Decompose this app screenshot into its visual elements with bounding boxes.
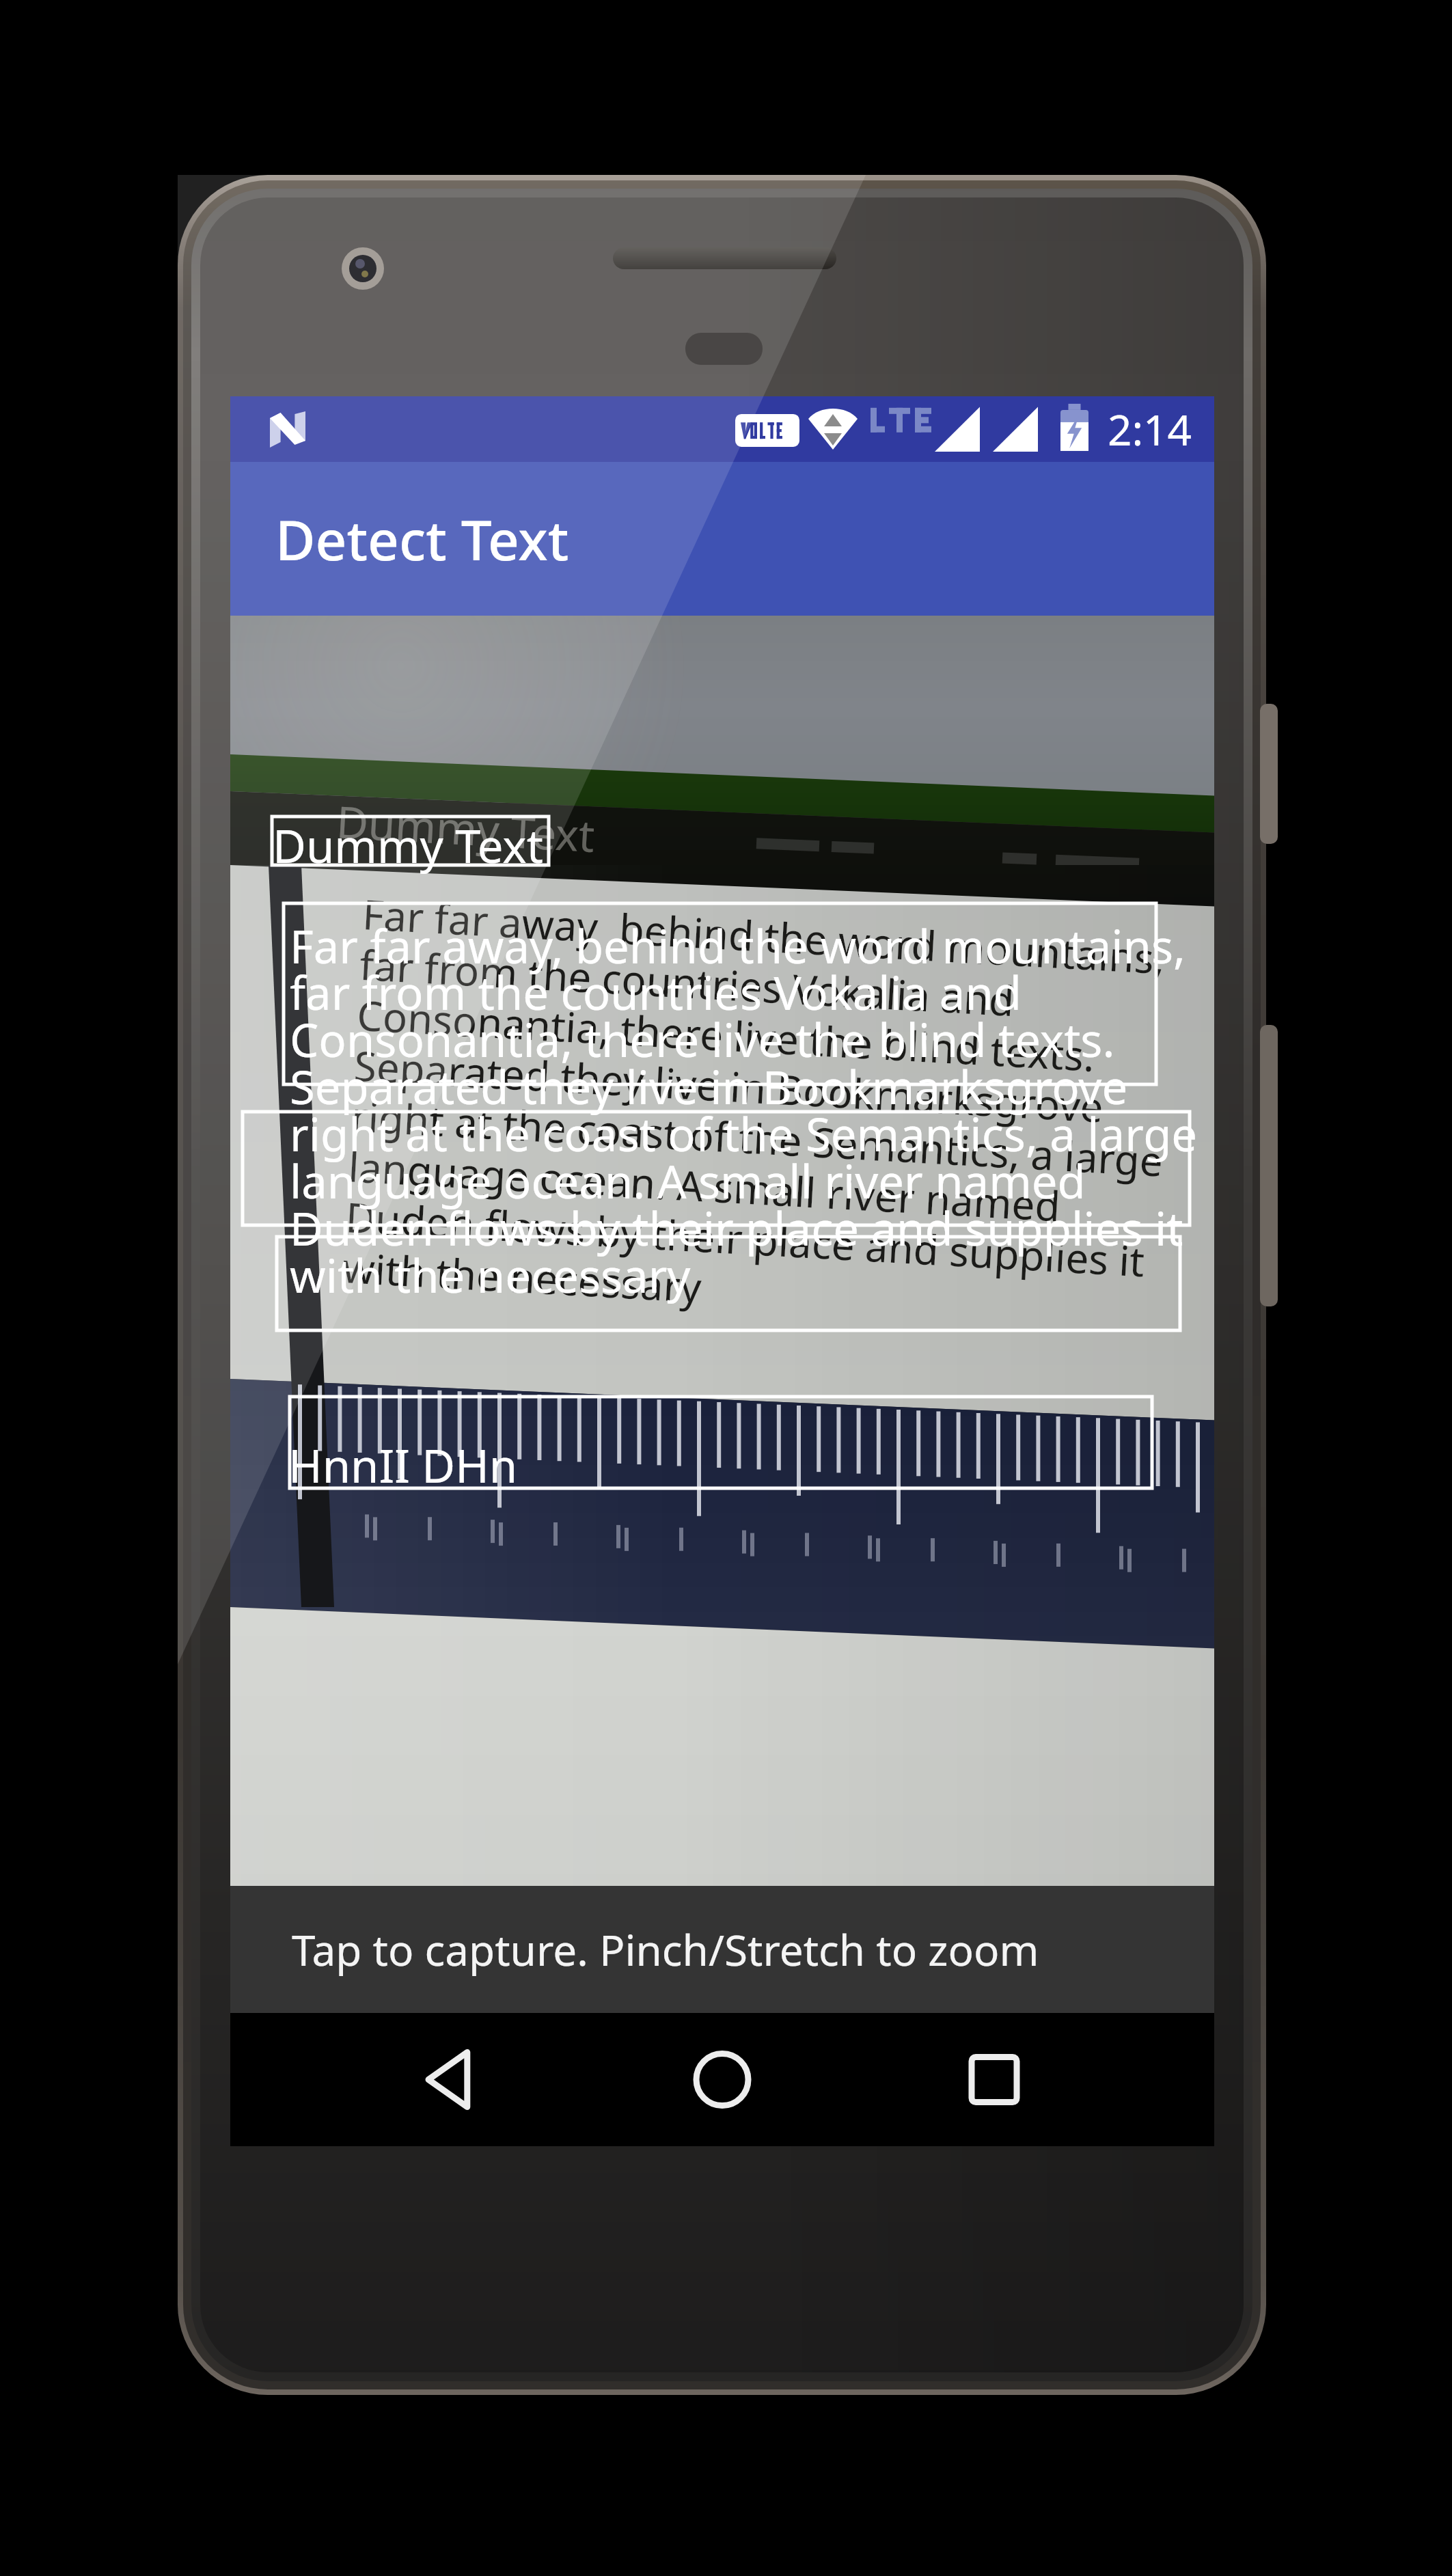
button[interactable]: Home bbox=[661, 2013, 784, 2146]
staticText: Dummy Text bbox=[273, 814, 543, 876]
staticText: 2:14 bbox=[1108, 400, 1192, 458]
staticText: Tap to capture. Pinch/Stretch to zoom bbox=[292, 1921, 1039, 1978]
button[interactable]: Back bbox=[390, 2013, 513, 2146]
button[interactable]: Camera preview, tap to capture bbox=[230, 616, 1214, 1886]
button[interactable]: Recents bbox=[933, 2013, 1056, 2146]
staticText: Far far away, behind the word mountains,… bbox=[290, 914, 1198, 1306]
button[interactable]: Tap to capture. Pinch/Stretch to zoom bbox=[230, 1886, 1214, 2013]
button[interactable]: Detect Text bbox=[230, 462, 1214, 616]
staticText: Detect Text bbox=[275, 502, 569, 576]
staticText: Dummy Text bbox=[335, 791, 597, 865]
staticText: HnnII DHn bbox=[288, 1434, 518, 1496]
staticText: Far far away behind the word mountains, … bbox=[341, 886, 1176, 1340]
